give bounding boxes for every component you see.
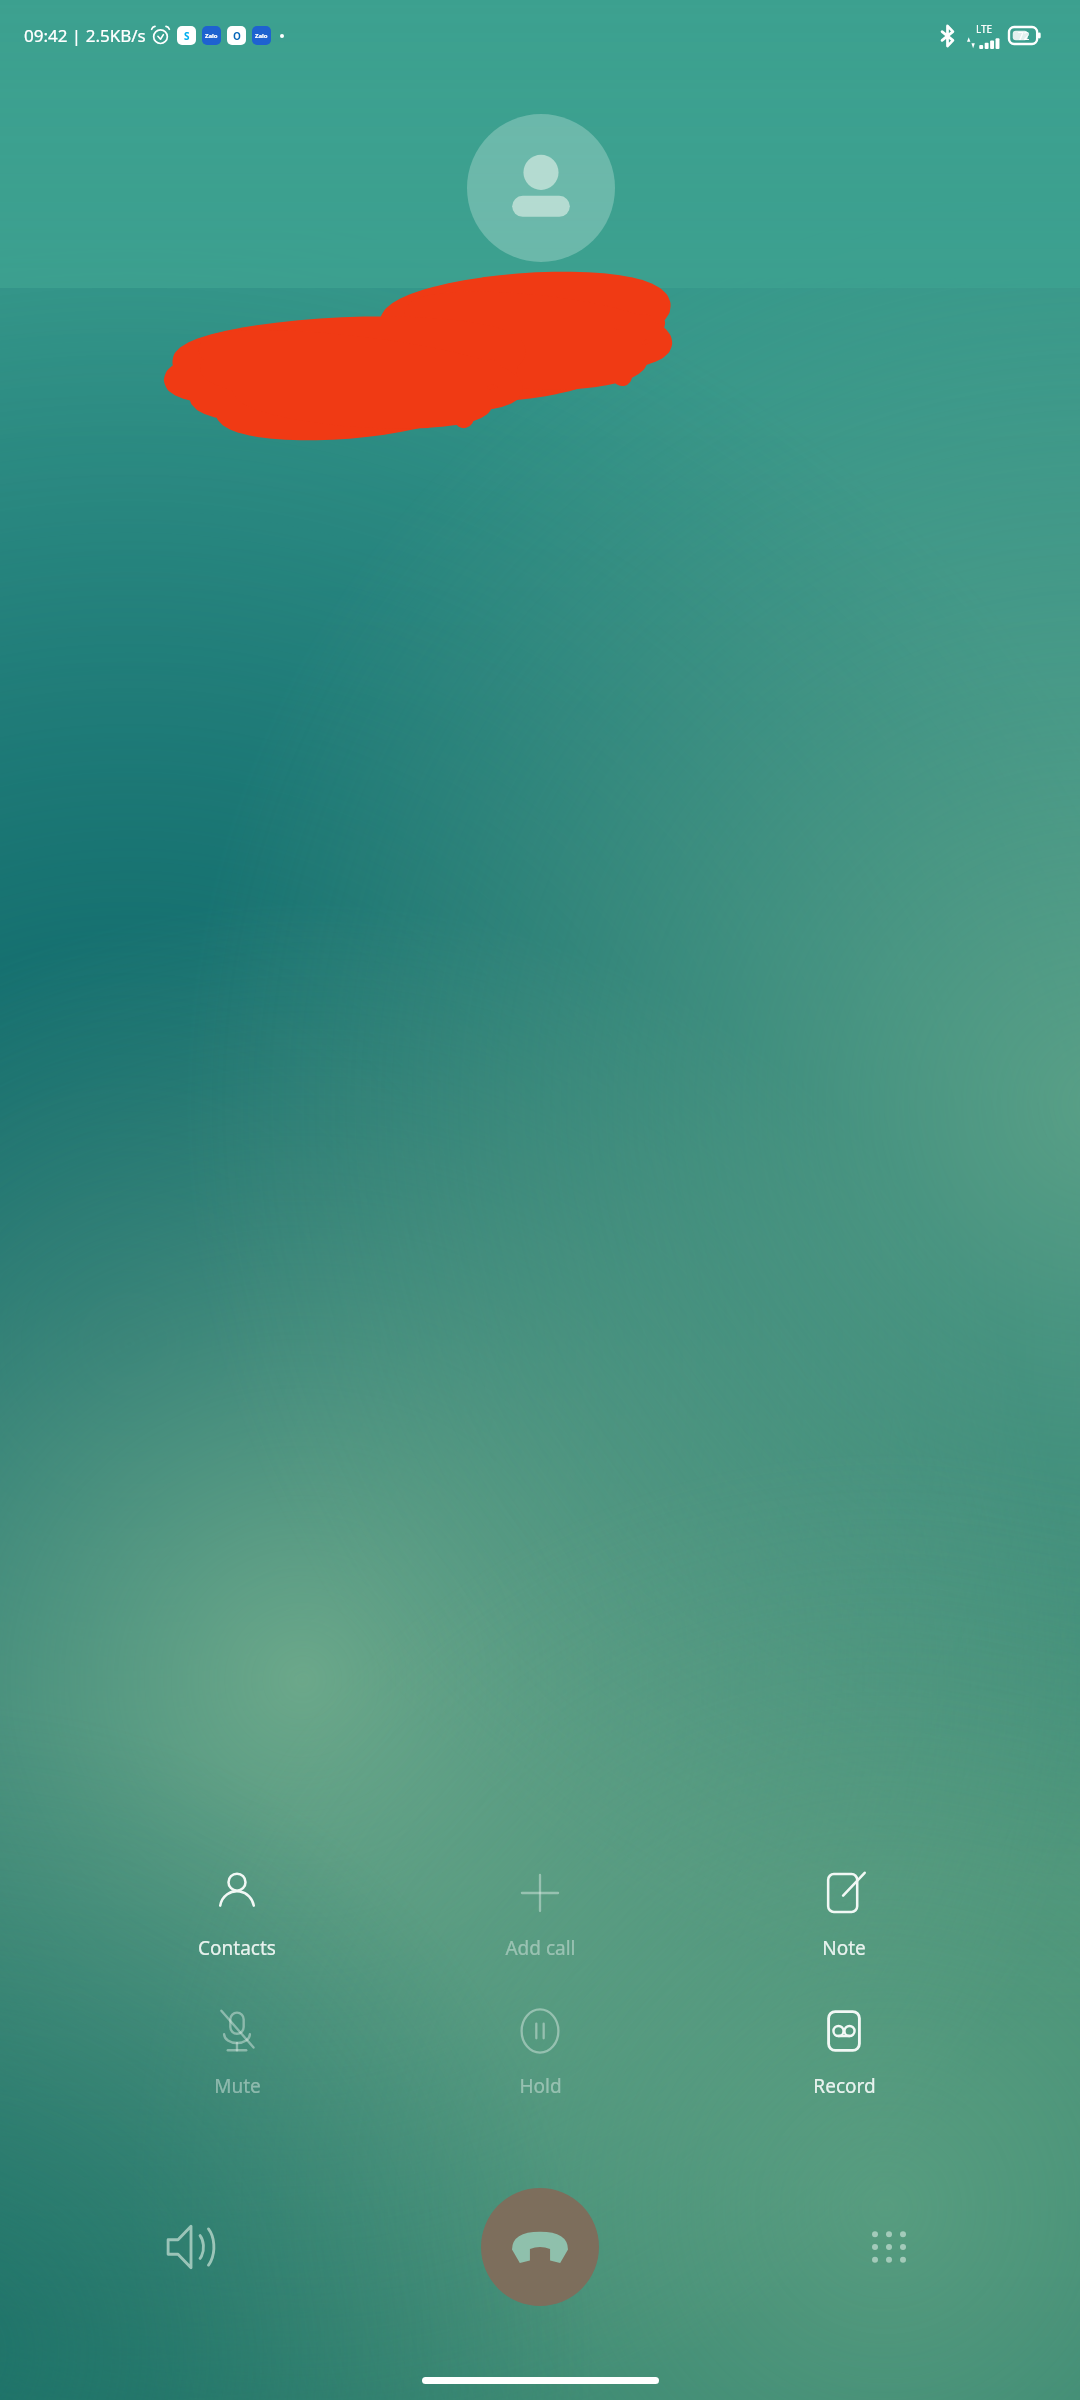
staticText: O: [233, 29, 241, 43]
staticText: Add call: [505, 1935, 576, 1961]
staticText: Zalo: [255, 32, 268, 40]
button[interactable]: Mute: [162, 1997, 312, 2105]
button[interactable]: End call: [481, 2188, 599, 2306]
staticText: LTE: [976, 22, 993, 36]
staticText: 09:42 | 2.5KB/s: [24, 24, 146, 47]
staticText: Note: [822, 1935, 866, 1961]
button[interactable]: Dialpad: [848, 2206, 930, 2288]
button[interactable]: Note: [769, 1859, 919, 1967]
staticText: Mute: [214, 2073, 261, 2099]
staticText: Hold: [519, 2073, 562, 2099]
button[interactable]: Speaker: [150, 2206, 232, 2288]
button[interactable]: Hold: [465, 1997, 615, 2105]
staticText: Contacts: [198, 1935, 276, 1961]
staticText: Record: [813, 2073, 876, 2099]
button[interactable]: Contacts: [162, 1859, 312, 1967]
button[interactable]: Add call: [465, 1859, 615, 1967]
staticText: S: [184, 29, 190, 43]
staticText: 72: [1018, 29, 1030, 43]
staticText: Zalo: [205, 32, 218, 40]
button[interactable]: Record: [769, 1997, 919, 2105]
